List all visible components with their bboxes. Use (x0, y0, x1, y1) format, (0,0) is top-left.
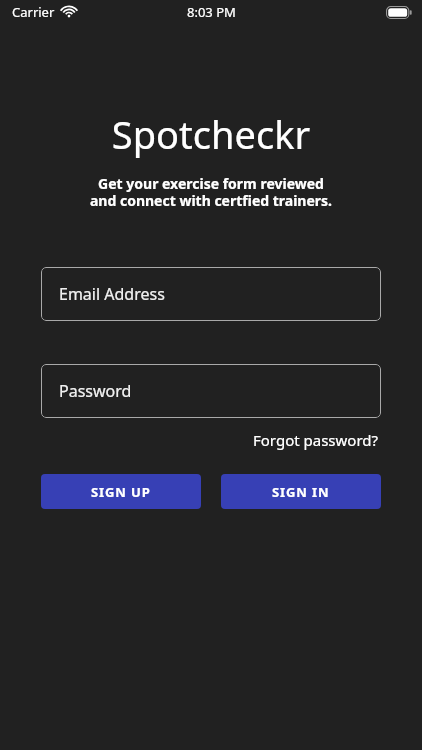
staticText: Carrier (12, 3, 55, 21)
staticText: SIGN IN (272, 483, 330, 501)
button[interactable]: Forgot password? (251, 427, 381, 453)
other: Battery full (386, 6, 412, 19)
staticText: Password (59, 380, 132, 402)
other: Wi-Fi signal (61, 6, 77, 18)
button[interactable]: Password (41, 364, 381, 418)
staticText: Get your exercise form reviewed and conn… (0, 174, 422, 210)
staticText: Spotcheckr (0, 108, 422, 160)
button[interactable]: Email Address (41, 267, 381, 321)
staticText: Email Address (59, 283, 165, 305)
staticText: SIGN UP (91, 483, 151, 501)
staticText: Forgot password? (253, 430, 379, 450)
button[interactable]: SIGN UP (41, 474, 201, 509)
staticText: 8:03 PM (187, 3, 236, 21)
button[interactable]: SIGN IN (221, 474, 381, 509)
